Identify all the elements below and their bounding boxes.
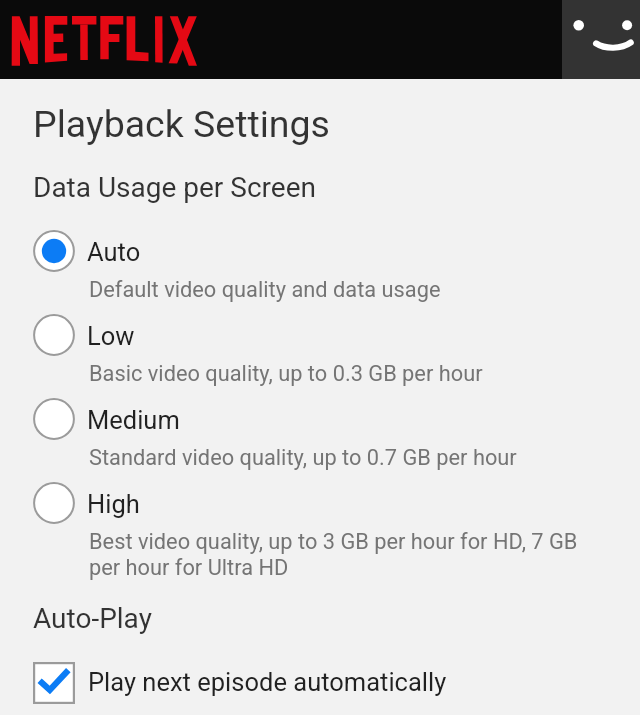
staticText: Basic video quality, up to 0.3 GB per ho… — [89, 361, 483, 387]
staticText: per hour for Ultra HD — [89, 555, 289, 581]
staticText: Standard video quality, up to 0.7 GB per… — [89, 445, 517, 471]
staticText: Best video quality, up to 3 GB per hour … — [89, 529, 578, 555]
button[interactable]: High — [0, 482, 640, 594]
staticText: High — [87, 489, 140, 519]
button[interactable]: Netflix home — [12, 16, 197, 66]
button[interactable]: Auto — [0, 230, 640, 310]
button[interactable]: Profile — [562, 0, 640, 79]
staticText: Data Usage per Screen — [33, 171, 316, 204]
staticText: Play next episode automatically — [88, 667, 447, 697]
staticText: Default video quality and data usage — [89, 277, 441, 303]
button[interactable]: Medium — [0, 398, 640, 478]
staticText: Auto — [87, 237, 141, 267]
staticText: Medium — [87, 405, 180, 435]
staticText: Playback Settings — [33, 102, 330, 146]
button[interactable]: Low — [0, 314, 640, 394]
staticText: Low — [87, 321, 135, 351]
staticText: Auto-Play — [33, 602, 152, 635]
button[interactable]: Play next episode automatically — [0, 655, 640, 710]
